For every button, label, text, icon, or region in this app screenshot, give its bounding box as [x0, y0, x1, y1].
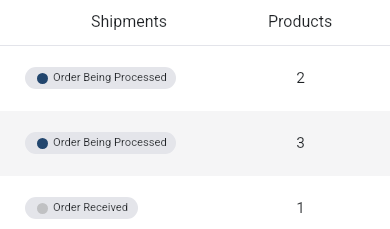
button[interactable]: Order Being Processed — [0, 111, 390, 176]
button[interactable]: Order Being Processed — [25, 67, 176, 89]
staticText: Order Received — [53, 201, 129, 214]
staticText: 2 — [296, 69, 305, 87]
button[interactable]: Order Received — [0, 176, 390, 229]
button[interactable]: Order Received — [25, 197, 138, 219]
staticText: Order Being Processed — [53, 136, 167, 149]
staticText: 3 — [296, 134, 305, 152]
staticText: Order Being Processed — [53, 71, 167, 84]
button[interactable]: Order Being Processed — [0, 46, 390, 111]
button[interactable]: Order Being Processed — [25, 132, 176, 154]
staticText: 1 — [296, 199, 305, 217]
staticText: Shipments — [91, 12, 168, 31]
staticText: Products — [268, 12, 333, 31]
